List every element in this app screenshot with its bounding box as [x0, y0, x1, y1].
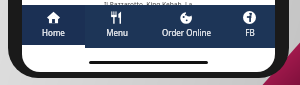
- button[interactable]: Home: [22, 5, 85, 48]
- button[interactable]: Facebook: [224, 5, 275, 48]
- button[interactable]: Order Online: [148, 5, 224, 48]
- button[interactable]: Menu: [85, 5, 148, 48]
- staticText: Order Online: [162, 27, 211, 38]
- staticText: FB: [245, 27, 255, 38]
- staticText: Home: [42, 27, 65, 38]
- staticText: Menu: [106, 27, 128, 38]
- staticText: Il Pazzarotto King Kebab La: [104, 0, 193, 5]
